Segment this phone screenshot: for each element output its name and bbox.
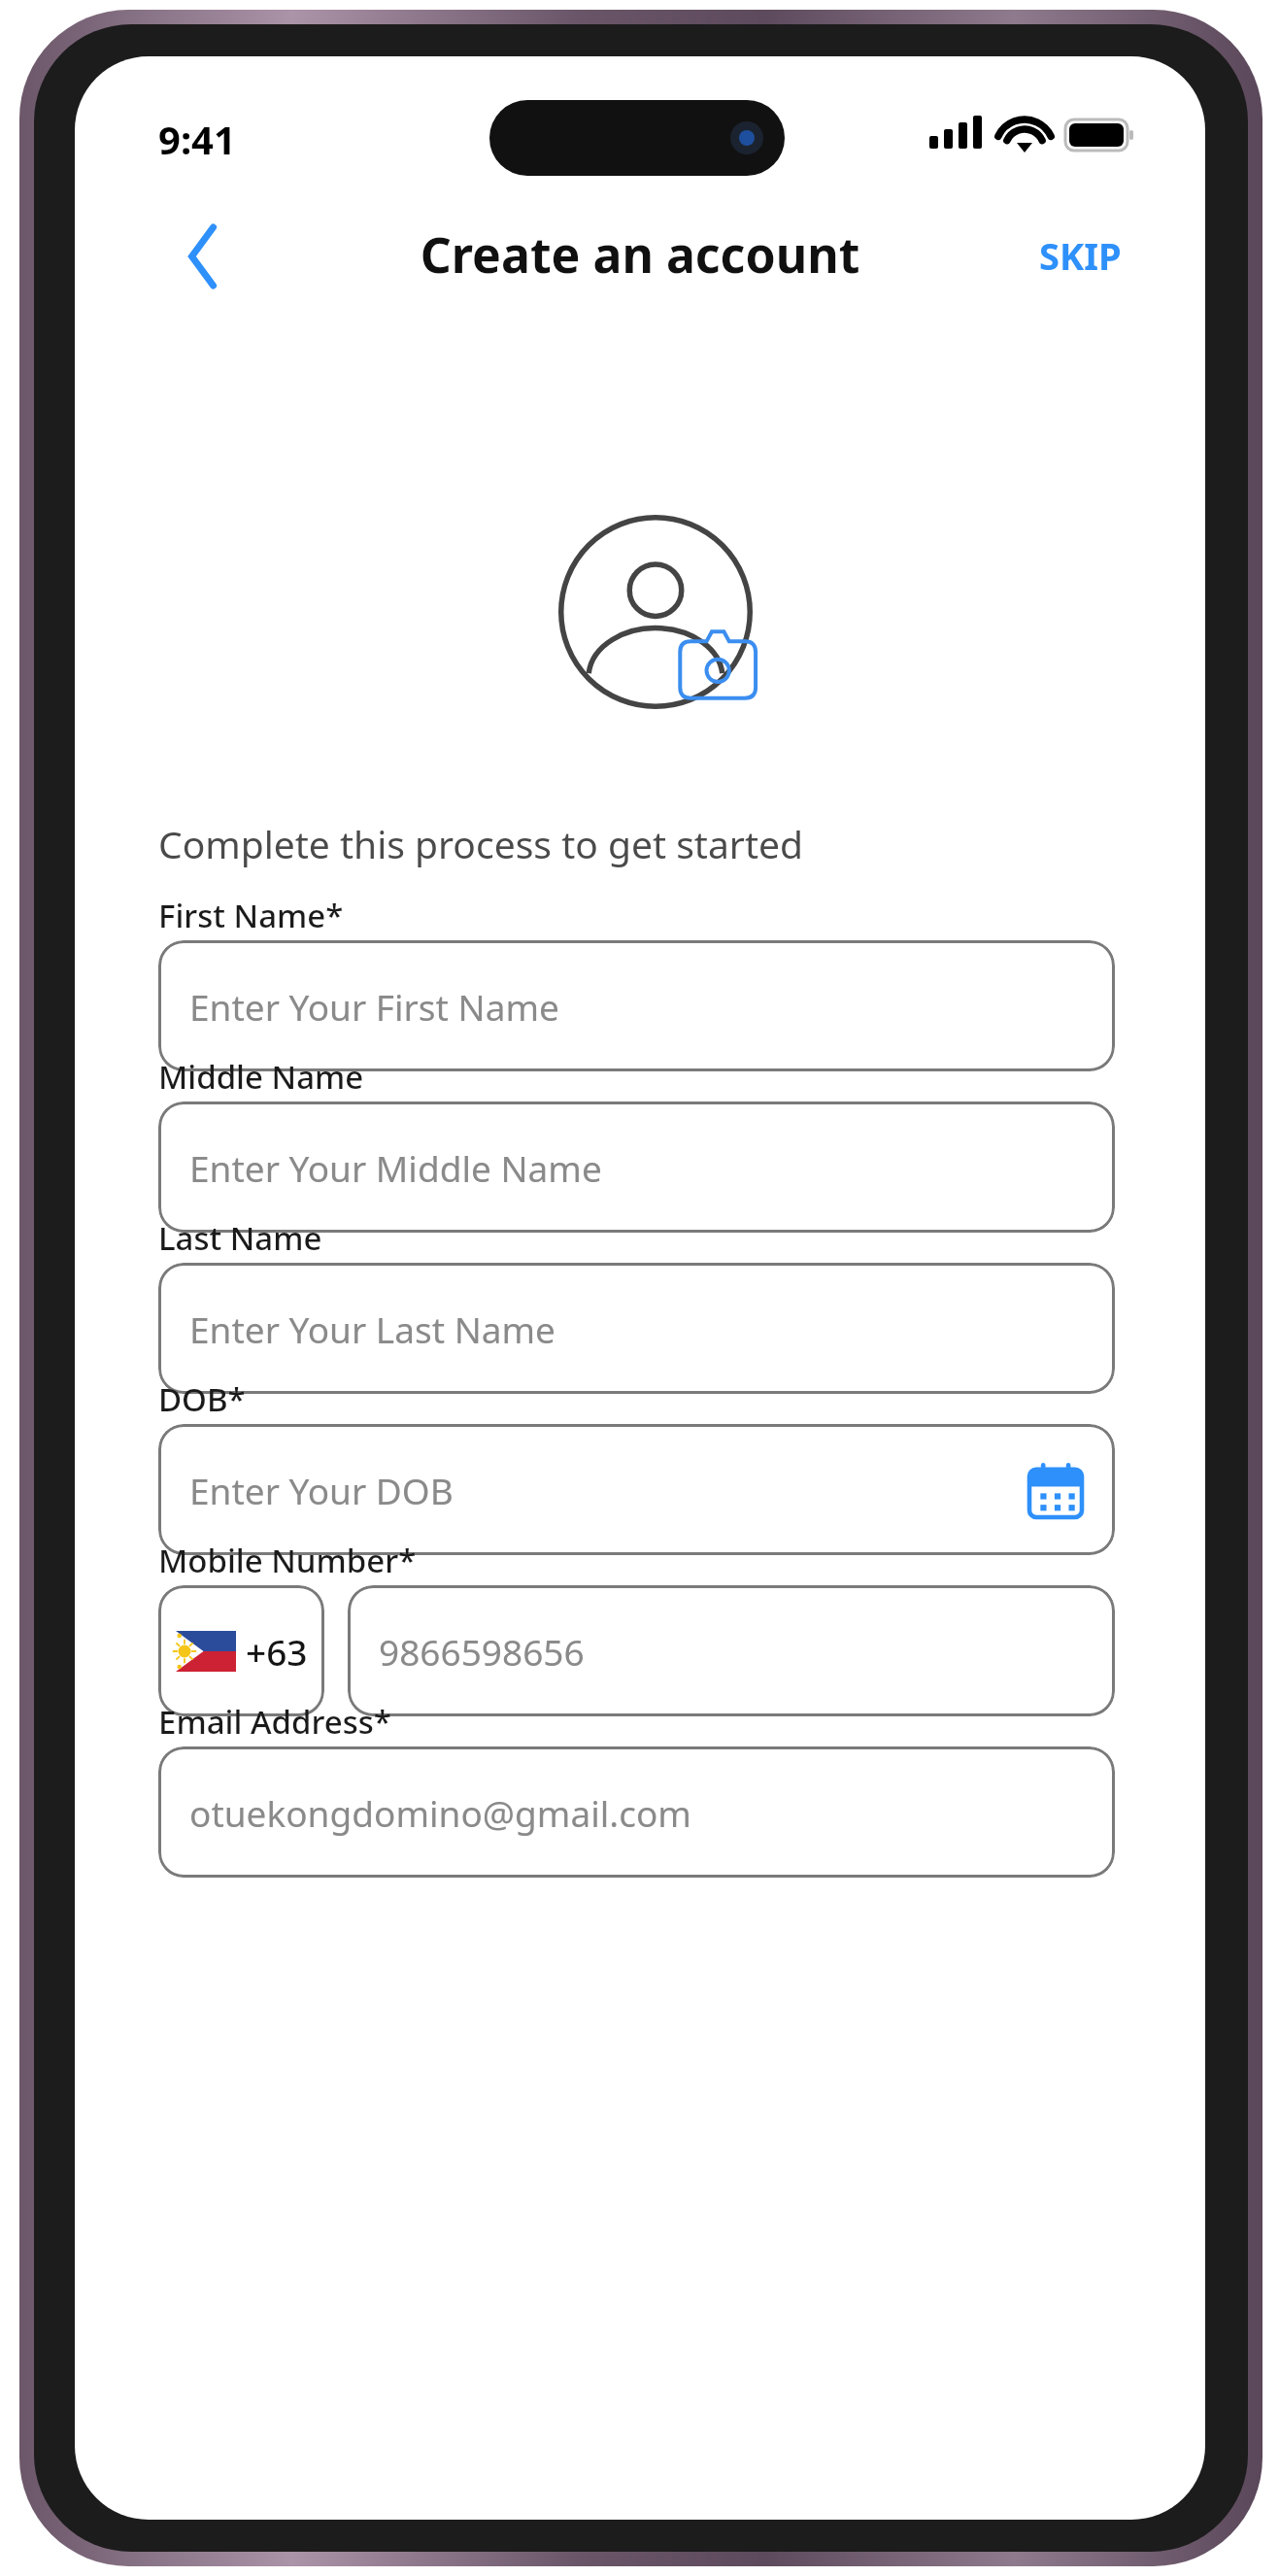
staticText: Create an account: [75, 221, 1205, 288]
button[interactable]: Enter Your Last Name: [158, 1263, 1115, 1394]
staticText: Enter Your Middle Name: [189, 1143, 602, 1192]
button[interactable]: Enter Your First Name: [158, 940, 1115, 1071]
button[interactable]: Enter Your Middle Name: [158, 1102, 1115, 1233]
staticText: Email Address*: [158, 1700, 391, 1744]
staticText: Mobile Number*: [158, 1539, 417, 1582]
button[interactable]: SKIP: [1007, 220, 1153, 291]
staticText: Enter Your Last Name: [189, 1305, 555, 1353]
button[interactable]: Enter Your DOB: [158, 1424, 1115, 1555]
staticText: 9866598656: [379, 1627, 585, 1676]
staticText: Enter Your First Name: [189, 982, 559, 1031]
button[interactable]: 9866598656: [348, 1585, 1115, 1716]
button[interactable]: Back: [152, 210, 246, 303]
button[interactable]: Change profile photo: [558, 515, 753, 709]
staticText: SKIP: [1039, 230, 1122, 281]
staticText: Enter Your DOB: [189, 1466, 454, 1514]
staticText: First Name*: [158, 894, 344, 937]
staticText: Last Name: [158, 1216, 322, 1260]
staticText: DOB*: [158, 1377, 246, 1421]
staticText: +63: [246, 1627, 308, 1676]
staticText: 9:41: [158, 113, 236, 165]
button[interactable]: otuekongdomino@gmail.com: [158, 1746, 1115, 1878]
staticText: otuekongdomino@gmail.com: [189, 1788, 691, 1837]
staticText: Complete this process to get started: [158, 818, 803, 869]
staticText: Middle Name: [158, 1055, 364, 1099]
button[interactable]: +63: [158, 1585, 324, 1716]
